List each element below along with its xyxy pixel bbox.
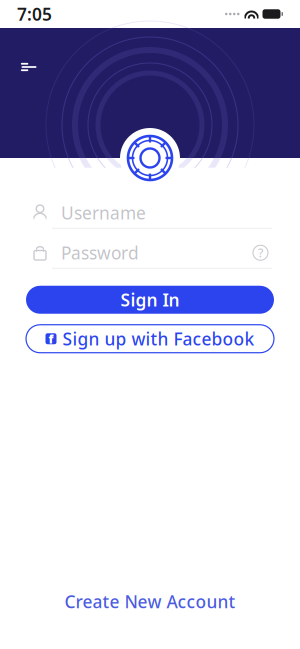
button[interactable]: Password help [249, 241, 272, 264]
staticText: Password [61, 241, 139, 264]
staticText: f [48, 331, 53, 347]
button[interactable]: f [26, 325, 274, 353]
button[interactable]: Create New Account [48, 582, 251, 621]
button[interactable]: Back [10, 48, 48, 86]
button[interactable]: Sign In [26, 286, 274, 314]
staticText: Username [61, 201, 146, 224]
staticText: ? [258, 245, 263, 261]
staticText: Sign In [120, 288, 179, 311]
staticText: 7:05 [17, 2, 52, 25]
staticText: Create New Account [64, 590, 235, 613]
staticText: Sign up with Facebook [62, 327, 254, 350]
